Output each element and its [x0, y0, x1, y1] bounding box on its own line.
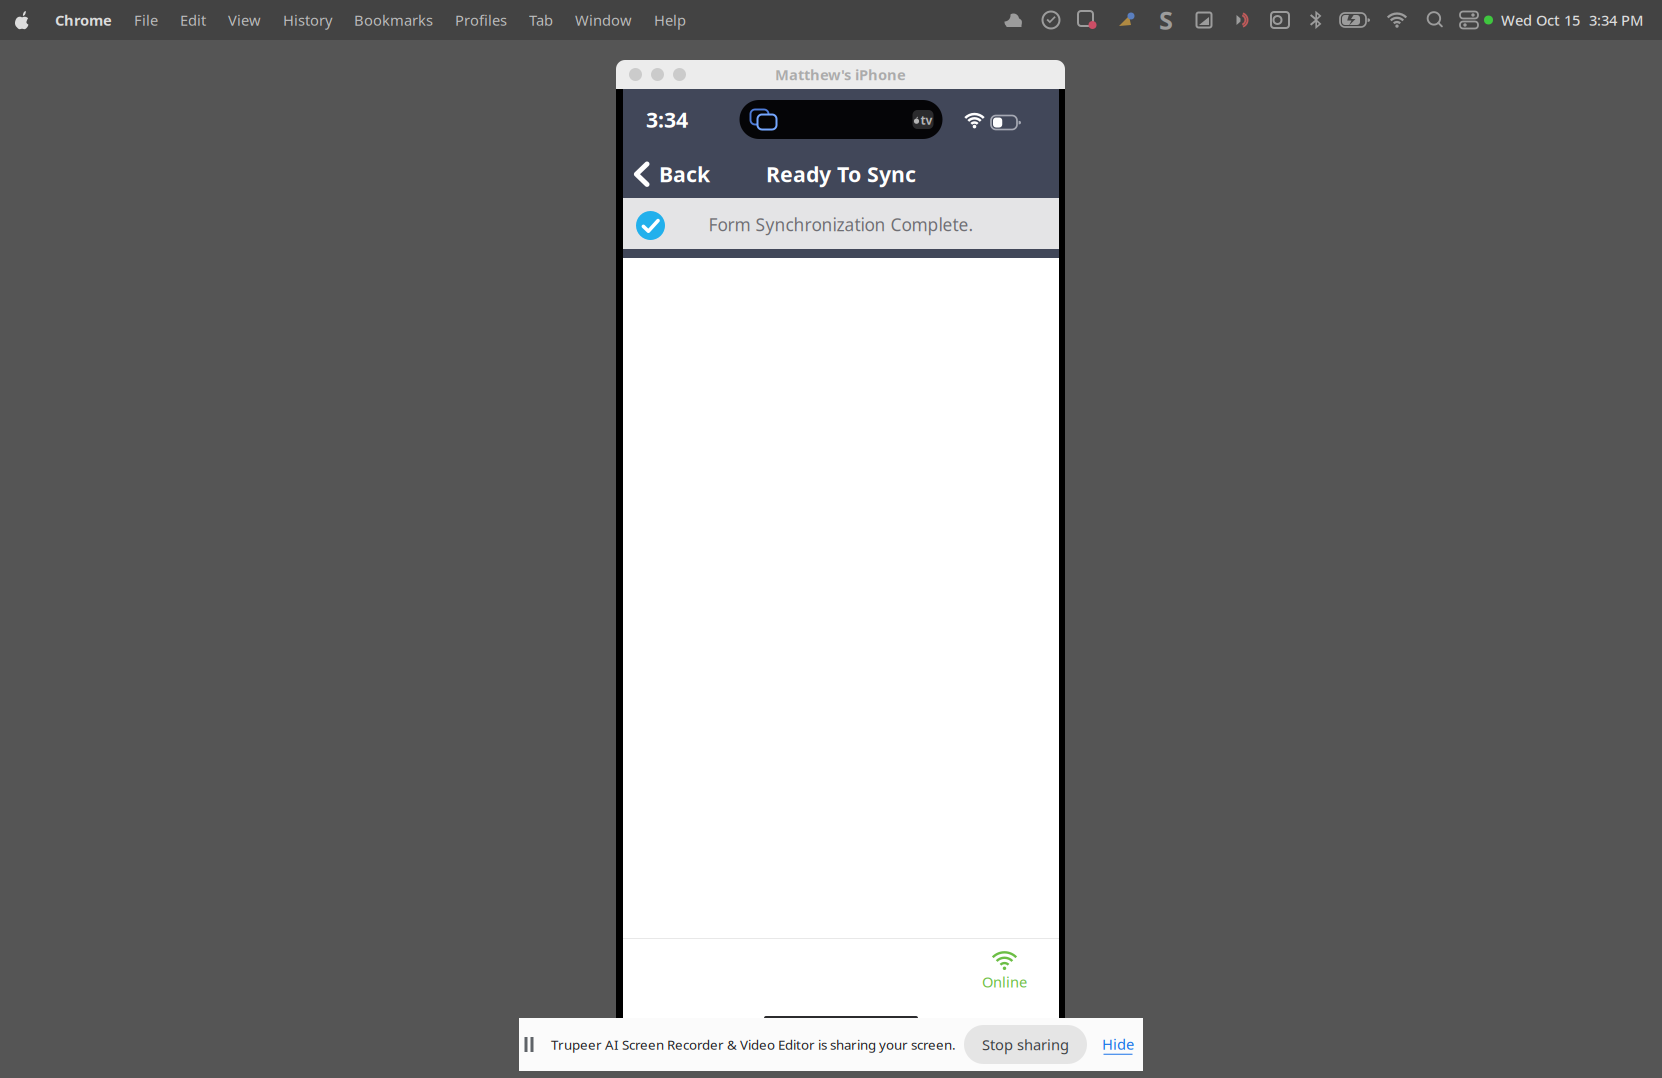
- button[interactable]: Wi-Fi: [1377, 0, 1417, 40]
- button[interactable]: Online: [974, 939, 1035, 997]
- button[interactable]: Bluetooth: [1298, 0, 1334, 40]
- button[interactable]: Bookmarks: [343, 0, 444, 40]
- button[interactable]: Apple menu: [0, 0, 44, 40]
- staticText: 3:34: [646, 105, 688, 134]
- button[interactable]: Window: [564, 0, 643, 40]
- button[interactable]: Chrome: [44, 0, 123, 40]
- button[interactable]: View: [217, 0, 272, 40]
- staticText: Edit: [180, 10, 206, 30]
- button[interactable]: Setapp: [1147, 0, 1185, 40]
- button[interactable]: Outlook: [1262, 0, 1298, 40]
- button[interactable]: File: [123, 0, 169, 40]
- staticText: Profiles: [455, 10, 507, 30]
- staticText: S: [1159, 3, 1173, 37]
- button[interactable]: Sound: [1223, 0, 1262, 40]
- staticText: Window: [575, 10, 632, 30]
- staticText: Back: [659, 160, 710, 188]
- button[interactable]: Stop sharing: [964, 1025, 1087, 1064]
- staticText: Wed Oct 15: [1501, 10, 1580, 30]
- button[interactable]: Profiles: [444, 0, 518, 40]
- staticText: File: [134, 10, 158, 30]
- button[interactable]: Tab: [518, 0, 564, 40]
- button[interactable]: Screenshot: [1185, 0, 1223, 40]
- button[interactable]: Minimize window: [651, 68, 664, 81]
- button[interactable]: Help: [643, 0, 697, 40]
- staticText: Bookmarks: [354, 10, 433, 30]
- button[interactable]: Cloud status: [995, 0, 1033, 40]
- staticText: Tab: [529, 10, 553, 30]
- button[interactable]: History: [272, 0, 343, 40]
- button[interactable]: Spotlight Search: [1417, 0, 1454, 40]
- staticText: 3:34 PM: [1589, 10, 1643, 30]
- staticText: Ready To Sync: [766, 160, 916, 188]
- staticText: Chrome: [55, 10, 112, 30]
- staticText: History: [283, 10, 332, 30]
- button[interactable]: Close window: [629, 68, 642, 81]
- staticText: Trupeer AI Screen Recorder & Video Edito…: [551, 1036, 956, 1053]
- button[interactable]: Edit: [169, 0, 217, 40]
- button[interactable]: Wed Oct 15: [1493, 0, 1662, 40]
- button[interactable]: Control Center: [1454, 0, 1484, 40]
- staticText: Help: [654, 10, 686, 30]
- staticText: View: [228, 10, 261, 30]
- staticText: Matthew's iPhone: [775, 65, 906, 84]
- button[interactable]: Back: [623, 150, 720, 198]
- staticText: Form Synchronization Complete.: [708, 213, 973, 236]
- button[interactable]: Color picker: [1105, 0, 1147, 40]
- staticText: tv: [920, 112, 932, 128]
- button[interactable]: Battery: [1334, 0, 1377, 40]
- button[interactable]: Zoom window: [673, 68, 686, 81]
- staticText: Online: [982, 972, 1027, 991]
- button[interactable]: Software update: [1033, 0, 1069, 40]
- button[interactable]: Hide: [1098, 1025, 1138, 1064]
- staticText: Hide: [1102, 1034, 1134, 1054]
- staticText: Stop sharing: [982, 1035, 1069, 1054]
- button[interactable]: Notifications: [1069, 0, 1105, 40]
